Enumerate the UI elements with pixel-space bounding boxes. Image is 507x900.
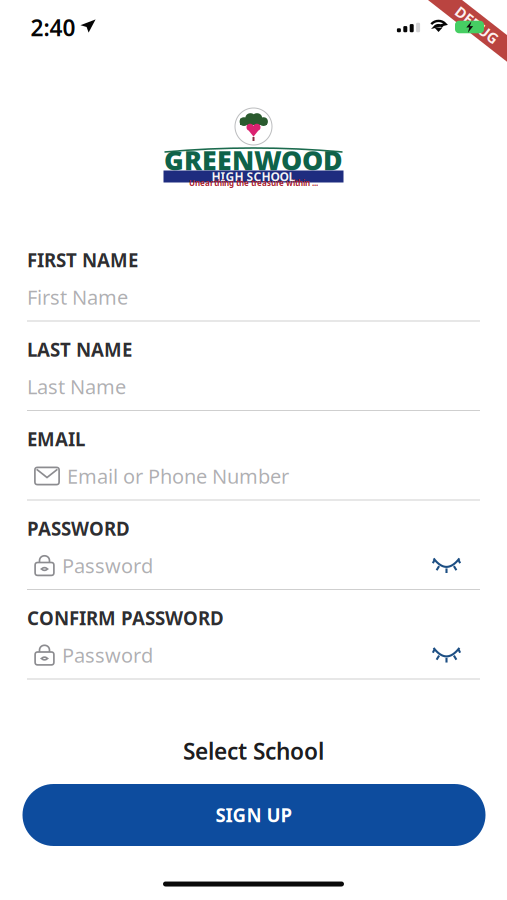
button[interactable]: Select School <box>153 736 353 766</box>
staticText: EMAIL <box>27 427 85 451</box>
staticText: Select School <box>183 736 324 766</box>
staticText: First Name <box>27 284 128 310</box>
staticText: GREENWOOD <box>164 142 343 178</box>
staticText: LAST NAME <box>27 337 132 362</box>
staticText: Last Name <box>27 373 126 400</box>
staticText: Password <box>62 552 153 579</box>
staticText: PASSWORD <box>27 516 130 541</box>
staticText: FIRST NAME <box>27 248 138 272</box>
staticText: DEBUG <box>451 15 502 35</box>
staticText: Unearthing the treasure within ... <box>189 178 318 188</box>
staticText: SIGN UP <box>215 803 292 827</box>
staticText: Email or Phone Number <box>67 463 289 489</box>
staticText: 2:40 <box>30 12 75 42</box>
staticText: Password <box>62 642 153 668</box>
staticText: CONFIRM PASSWORD <box>27 606 224 630</box>
button[interactable]: SIGN UP <box>22 784 485 846</box>
staticText: HIGH SCHOOL <box>211 168 295 184</box>
